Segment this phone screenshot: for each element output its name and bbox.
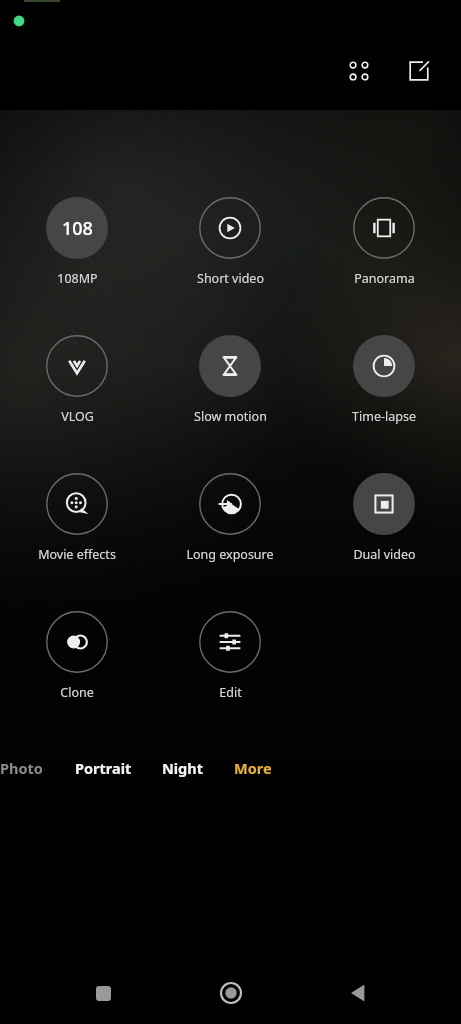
button[interactable]: Clone: [21, 609, 133, 703]
button[interactable]: VLOG: [21, 333, 133, 427]
staticText: Short video: [197, 270, 264, 287]
button[interactable]: Time-lapse: [328, 333, 440, 427]
staticText: 108: [62, 216, 93, 241]
button[interactable]: Movie effects: [21, 471, 133, 565]
staticText: More: [234, 758, 272, 778]
staticText: 108MP: [57, 270, 98, 287]
staticText: Edit: [219, 684, 242, 701]
staticText: Time-lapse: [352, 408, 416, 425]
staticText: Photo: [0, 758, 43, 778]
button[interactable]: More: [230, 754, 276, 782]
button[interactable]: Home: [207, 969, 255, 1017]
staticText: Long exposure: [186, 546, 274, 563]
button[interactable]: Edit: [174, 609, 286, 703]
button[interactable]: Photo: [0, 754, 47, 782]
staticText: Movie effects: [38, 546, 116, 563]
button[interactable]: Panorama: [328, 195, 440, 289]
staticText: Portrait: [75, 758, 132, 778]
button[interactable]: Modes grid: [335, 47, 383, 95]
button[interactable]: Portrait: [71, 754, 136, 782]
staticText: Night: [162, 758, 204, 778]
staticText: Panorama: [354, 270, 415, 287]
button[interactable]: Dual video: [328, 471, 440, 565]
button[interactable]: Edit modes: [395, 47, 443, 95]
button[interactable]: Short video: [174, 195, 286, 289]
staticText: Dual video: [353, 546, 416, 563]
button[interactable]: Night: [158, 754, 208, 782]
staticText: Clone: [60, 684, 94, 701]
button[interactable]: Back: [334, 969, 382, 1017]
button[interactable]: Slow motion: [174, 333, 286, 427]
staticText: Slow motion: [194, 408, 267, 425]
button[interactable]: 108: [21, 195, 133, 289]
button[interactable]: Long exposure: [174, 471, 286, 565]
staticText: VLOG: [61, 408, 94, 425]
button[interactable]: Recent apps: [79, 969, 127, 1017]
